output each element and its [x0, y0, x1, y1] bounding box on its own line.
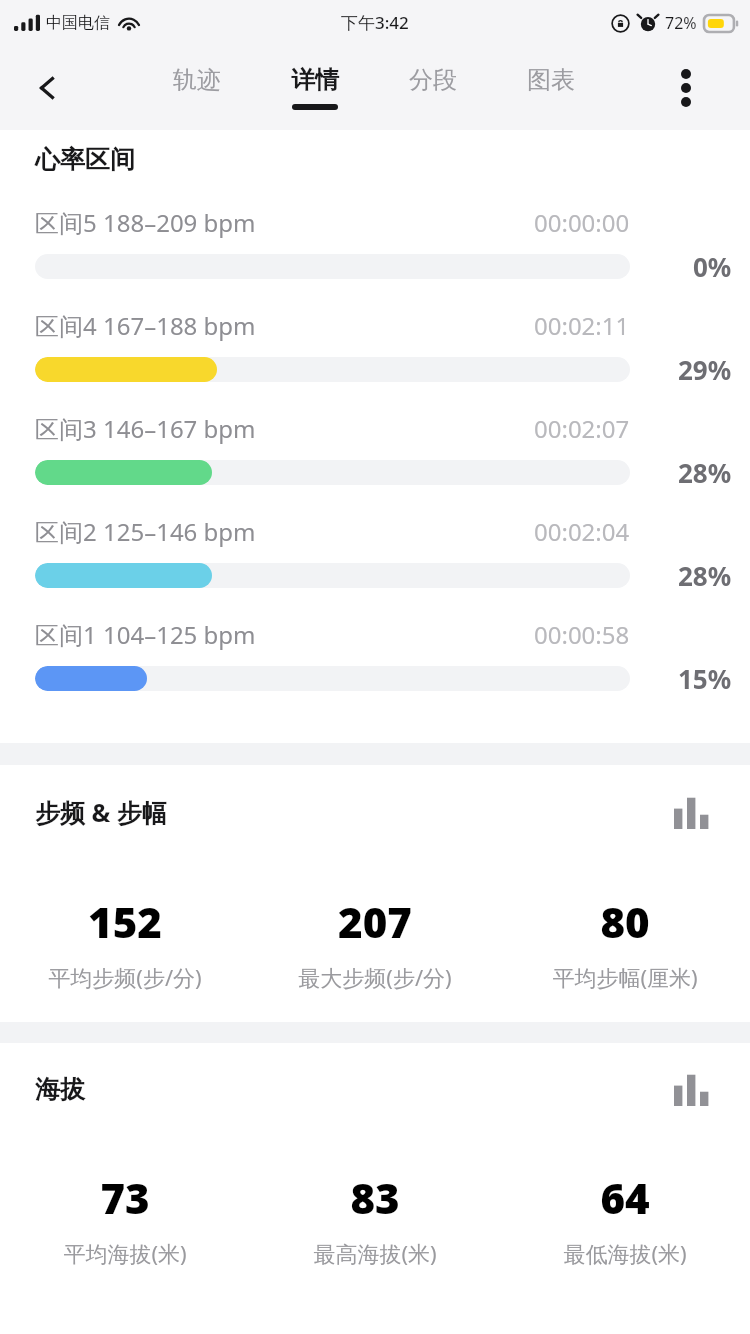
button[interactable]: 分段	[381, 45, 485, 130]
staticText: 29%	[678, 352, 732, 387]
staticText: 28%	[678, 558, 732, 593]
staticText: 中国电信	[46, 13, 110, 33]
staticText: 心率区间	[35, 144, 135, 175]
staticText: 28%	[678, 455, 732, 490]
button[interactable]: 详情	[263, 45, 367, 130]
staticText: 00:02:11	[534, 309, 630, 342]
staticText: 83	[350, 1169, 400, 1226]
staticText: 区间4 167–188 bpm	[35, 309, 256, 342]
staticText: 最低海拔(米)	[563, 1238, 687, 1268]
staticText: 73	[100, 1169, 150, 1226]
staticText: 15%	[678, 661, 732, 696]
staticText: 152	[88, 893, 162, 950]
staticText: 海拔	[35, 1074, 85, 1105]
staticText: 轨迹	[173, 65, 221, 95]
staticText: 步频 & 步幅	[35, 795, 167, 829]
staticText: 下午3:42	[341, 11, 409, 34]
staticText: 区间5 188–209 bpm	[35, 206, 256, 239]
staticText: 80	[600, 893, 650, 950]
staticText: 207	[338, 893, 412, 950]
staticText: 最大步频(步/分)	[298, 962, 452, 992]
staticText: 区间2 125–146 bpm	[35, 515, 256, 548]
staticText: 最高海拔(米)	[313, 1238, 437, 1268]
staticText: 00:00:00	[534, 206, 630, 239]
staticText: 平均海拔(米)	[63, 1238, 187, 1268]
button[interactable]: More options	[654, 56, 718, 120]
staticText: 区间3 146–167 bpm	[35, 412, 256, 445]
staticText: 72%	[665, 12, 697, 34]
staticText: 详情	[291, 65, 339, 95]
button[interactable]: Show chart	[668, 789, 720, 835]
button[interactable]: 轨迹	[145, 45, 249, 130]
button[interactable]: 图表	[499, 45, 603, 130]
staticText: 00:02:07	[534, 412, 630, 445]
button[interactable]: Back	[16, 56, 80, 120]
staticText: 图表	[527, 65, 575, 95]
staticText: 分段	[409, 65, 457, 95]
staticText: 区间1 104–125 bpm	[35, 618, 256, 651]
staticText: 64	[600, 1169, 650, 1226]
staticText: 平均步频(步/分)	[48, 962, 202, 992]
staticText: 0%	[693, 249, 732, 284]
staticText: 平均步幅(厘米)	[552, 962, 698, 992]
staticText: 00:02:04	[534, 515, 630, 548]
button[interactable]: Show chart	[668, 1066, 720, 1112]
staticText: 00:00:58	[534, 618, 630, 651]
